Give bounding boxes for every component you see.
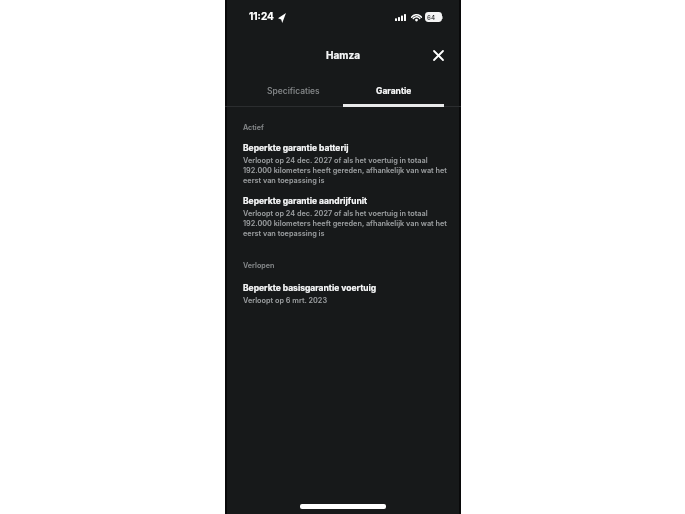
staticText: Beperkte garantie aandrijfunit [243,196,368,206]
button[interactable]: Garantie [343,78,444,106]
staticText: Garantie [376,86,412,96]
staticText: Specificaties [267,86,320,96]
staticText: Actief [243,123,264,132]
button[interactable]: Beperkte garantie batterij [243,143,452,185]
staticText: 64 [427,14,435,21]
button[interactable]: Beperkte garantie aandrijfunit [243,196,452,238]
staticText: Hamza [326,49,360,61]
staticText: 11:24 [249,10,274,22]
staticText: Verloopt op 6 mrt. 2023 [243,296,328,305]
staticText: Beperkte garantie batterij [243,143,349,153]
staticText: Beperkte basisgarantie voertuig [243,283,377,293]
staticText: Verloopt op 24 dec. 2027 of als het voer… [243,156,452,185]
button[interactable]: Sluiten [427,44,449,66]
button[interactable]: Specificaties [243,78,343,106]
staticText: Verlopen [243,261,275,270]
button[interactable]: Beperkte basisgarantie voertuig [243,283,452,305]
staticText: Verloopt op 24 dec. 2027 of als het voer… [243,209,452,238]
